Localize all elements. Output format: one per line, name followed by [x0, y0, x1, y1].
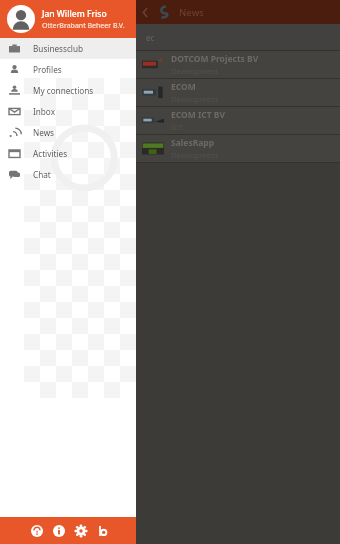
staticText: ECOM ICT BV [171, 109, 226, 121]
button[interactable]: Activities [0, 143, 136, 164]
staticText: Development [171, 66, 219, 76]
staticText: Profiles [33, 64, 62, 75]
staticText: Inbox [33, 106, 55, 117]
staticText: ec [146, 32, 155, 43]
button[interactable]: Businessclub [0, 38, 136, 59]
staticText: DOTCOM Projects BV [171, 53, 259, 65]
button[interactable]: Back [136, 3, 154, 21]
button[interactable]: Brand [93, 521, 113, 541]
staticText: News [179, 6, 204, 19]
staticText: Development [171, 94, 219, 104]
button[interactable]: Information [49, 521, 69, 541]
button[interactable]: Jan Willem Friso [0, 0, 136, 38]
button[interactable]: News [0, 122, 136, 143]
staticText: Businessclub [33, 43, 84, 54]
staticText: Jan Willem Friso [42, 8, 107, 20]
staticText: OtterBrabant Beheer B.V. [42, 21, 125, 31]
button[interactable]: Settings [71, 521, 91, 541]
staticText: SalesRapp [171, 137, 215, 149]
button[interactable]: SalesRapp [0, 135, 340, 162]
button[interactable]: Inbox [0, 101, 136, 122]
staticText: Development [171, 150, 219, 160]
staticText: News [33, 127, 55, 138]
staticText: Activities [33, 148, 68, 159]
button[interactable]: My connections [0, 80, 136, 101]
staticText: ECOM [171, 81, 196, 93]
button[interactable]: ECOM [0, 79, 340, 106]
staticText: ICT [171, 122, 183, 132]
button[interactable]: Chat [0, 164, 136, 185]
staticText: My connections [33, 85, 94, 96]
staticText: Chat [33, 169, 51, 180]
button[interactable]: ec [0, 24, 340, 50]
button[interactable]: DOTCOM Projects BV [0, 51, 340, 78]
button[interactable]: Profiles [0, 59, 136, 80]
button[interactable]: ECOM ICT BV [0, 107, 340, 134]
button[interactable]: Help [27, 521, 47, 541]
